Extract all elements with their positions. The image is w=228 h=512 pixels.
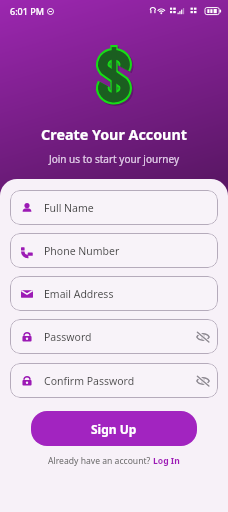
button[interactable]: Sign Up — [31, 411, 197, 446]
button[interactable]: Email Address — [10, 276, 218, 311]
staticText: Password — [44, 330, 92, 344]
staticText: Sign Up — [91, 421, 137, 437]
staticText: Phone Number — [44, 244, 120, 258]
other: Show password — [196, 330, 210, 344]
staticText: Create Your Account — [0, 125, 228, 144]
staticText: Full Name — [44, 201, 94, 215]
button[interactable]: Confirm Password — [10, 363, 218, 398]
staticText: 6:01 PM — [10, 5, 44, 17]
staticText: Email Address — [44, 287, 114, 301]
button[interactable]: Log In — [153, 455, 180, 467]
staticText: Log In — [153, 455, 180, 467]
button[interactable]: Password — [10, 319, 218, 354]
staticText: Join us to start your journey — [0, 152, 228, 166]
button[interactable]: Phone Number — [10, 233, 218, 268]
staticText: Already have an account? — [48, 455, 153, 467]
button[interactable]: Full Name — [10, 190, 218, 225]
other: Show password — [196, 374, 210, 388]
staticText: Confirm Password — [44, 374, 135, 388]
